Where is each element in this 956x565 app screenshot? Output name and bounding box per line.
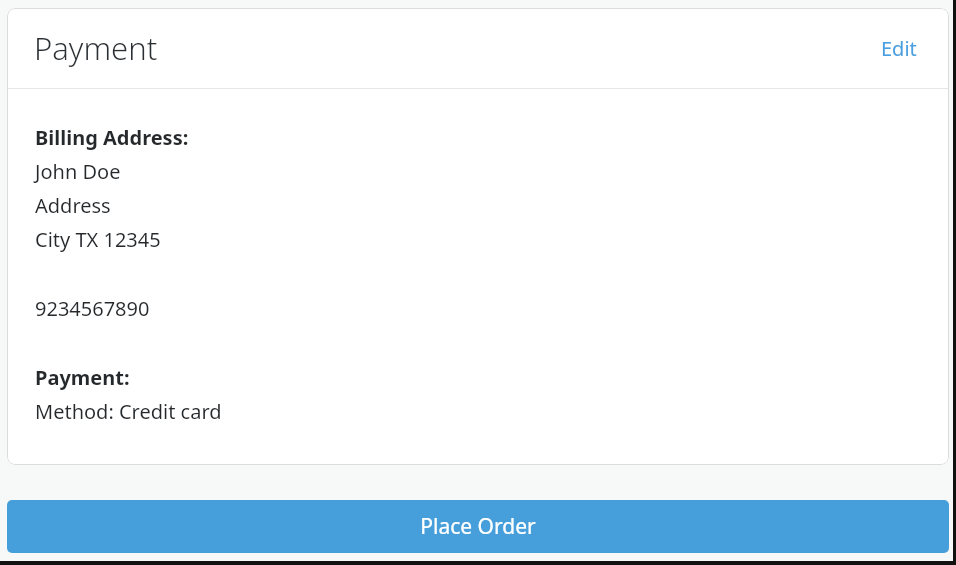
staticText: Payment bbox=[34, 27, 158, 69]
button[interactable]: Place Order bbox=[7, 500, 949, 553]
staticText: 9234567890 bbox=[35, 295, 150, 322]
staticText: Place Order bbox=[420, 512, 536, 541]
staticText: John Doe bbox=[35, 158, 121, 185]
staticText: Payment: bbox=[35, 364, 130, 391]
button[interactable]: Edit bbox=[877, 29, 921, 68]
staticText: Edit bbox=[881, 35, 917, 62]
staticText: City TX 12345 bbox=[35, 226, 161, 253]
staticText: Address bbox=[35, 192, 111, 219]
staticText: Billing Address: bbox=[35, 124, 189, 151]
staticText: Method: Credit card bbox=[35, 398, 222, 425]
